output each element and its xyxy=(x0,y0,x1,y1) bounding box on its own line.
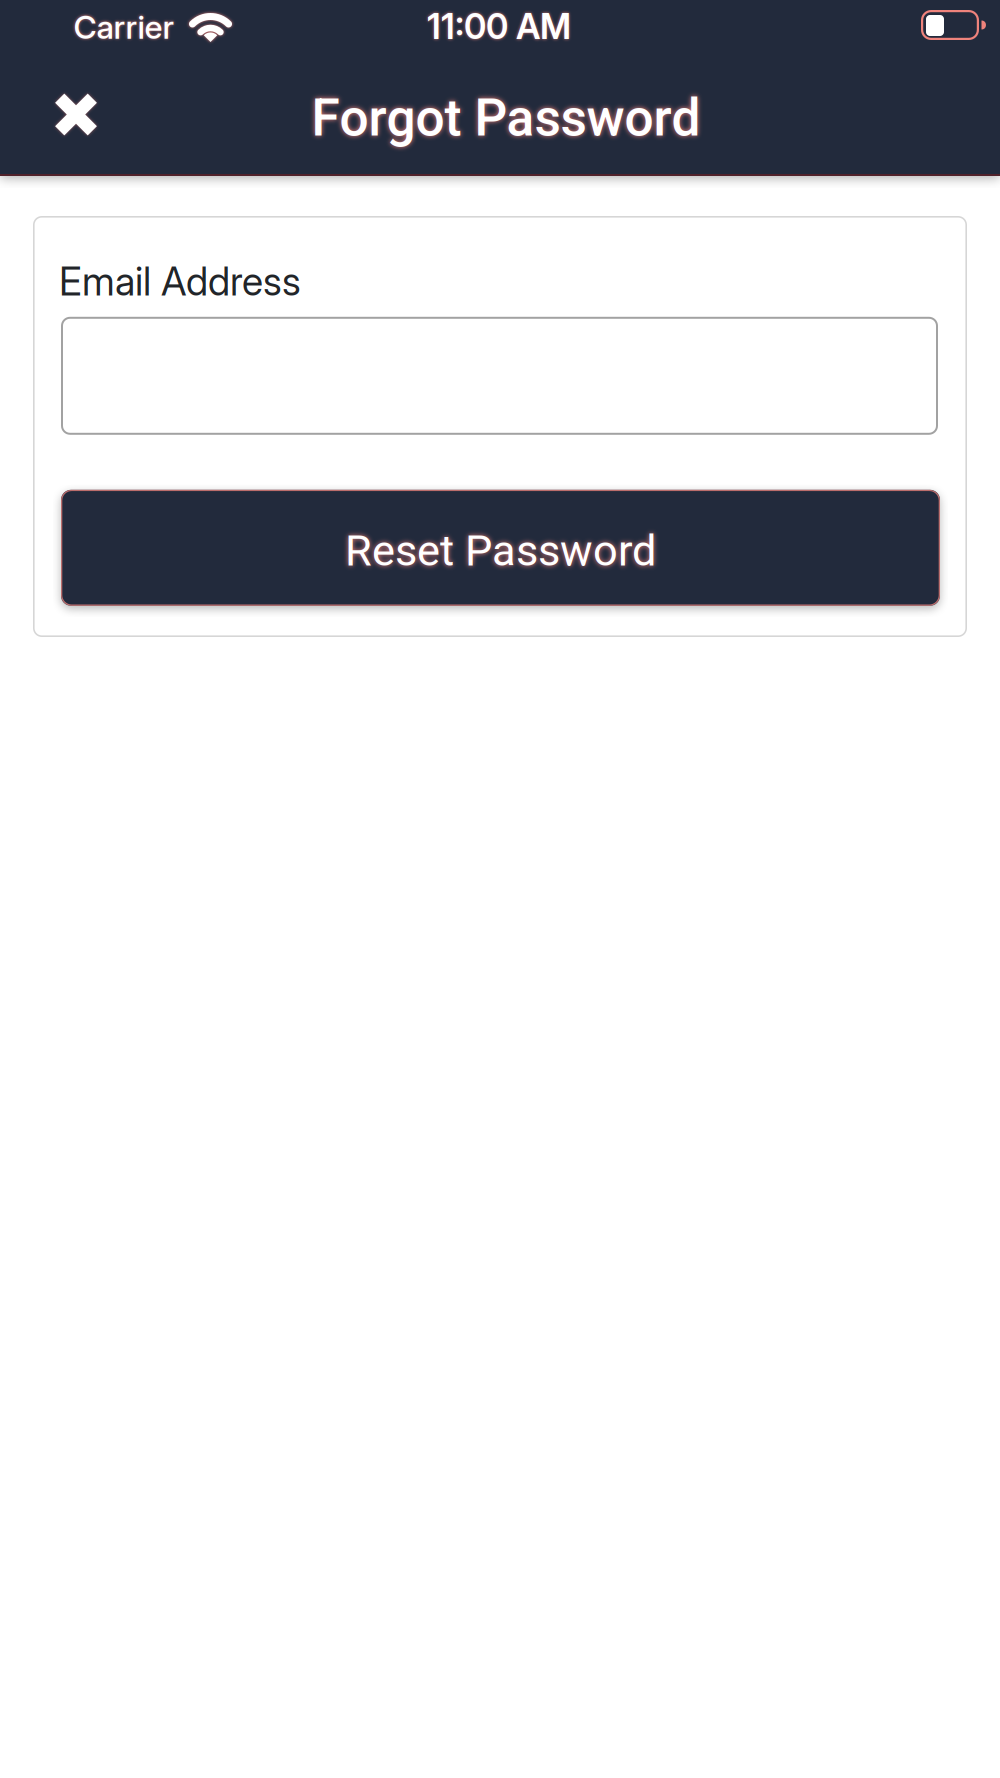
button[interactable]: Email Address xyxy=(61,317,938,435)
button[interactable]: Close xyxy=(55,93,97,135)
staticText: Forgot Password xyxy=(311,88,700,148)
staticText: Email Address xyxy=(59,258,301,305)
staticText: Carrier xyxy=(73,8,174,46)
staticText: 11:00 AM xyxy=(427,5,571,47)
staticText: Reset Password xyxy=(345,525,656,576)
button[interactable]: Reset Password xyxy=(61,490,940,606)
